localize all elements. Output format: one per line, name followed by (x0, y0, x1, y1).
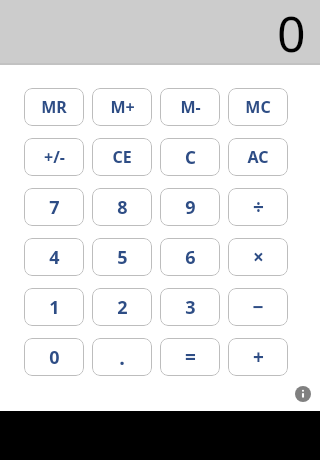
staticText: MC (245, 96, 271, 118)
staticText: C (185, 146, 196, 169)
button[interactable]: 5 (92, 238, 152, 276)
button[interactable]: Info (292, 383, 314, 405)
button[interactable]: = (160, 338, 220, 376)
button[interactable]: × (228, 238, 288, 276)
staticText: MR (41, 96, 67, 118)
button[interactable]: +/- (24, 138, 84, 176)
button[interactable]: 3 (160, 288, 220, 326)
staticText: = (185, 344, 196, 370)
button[interactable]: 1 (24, 288, 84, 326)
staticText: − (252, 294, 264, 320)
staticText: 0 (277, 0, 306, 64)
button[interactable]: 9 (160, 188, 220, 226)
button[interactable]: ÷ (228, 188, 288, 226)
staticText: ÷ (253, 194, 264, 220)
button[interactable]: 8 (92, 188, 152, 226)
staticText: 7 (49, 195, 60, 220)
button[interactable]: 0 (24, 338, 84, 376)
staticText: +/- (44, 146, 65, 168)
button[interactable]: 4 (24, 238, 84, 276)
button[interactable]: 6 (160, 238, 220, 276)
staticText: 3 (185, 295, 196, 320)
button[interactable]: CE (92, 138, 152, 176)
staticText: 0 (49, 345, 60, 370)
staticText: CE (112, 146, 132, 168)
staticText: 5 (117, 245, 128, 270)
button[interactable]: M- (160, 88, 220, 126)
staticText: AC (247, 146, 269, 168)
button[interactable]: 2 (92, 288, 152, 326)
staticText: × (253, 244, 264, 270)
staticText: 2 (117, 295, 128, 320)
button[interactable]: AC (228, 138, 288, 176)
staticText: M+ (110, 96, 135, 118)
button[interactable]: . (92, 338, 152, 376)
button[interactable]: C (160, 138, 220, 176)
staticText: 6 (185, 245, 196, 270)
staticText: M- (180, 96, 201, 118)
button[interactable]: MC (228, 88, 288, 126)
button[interactable]: M+ (92, 88, 152, 126)
staticText: 8 (117, 195, 128, 220)
button[interactable]: 7 (24, 188, 84, 226)
staticText: 4 (49, 245, 60, 270)
staticText: . (119, 344, 125, 371)
staticText: + (253, 344, 264, 370)
button[interactable]: MR (24, 88, 84, 126)
staticText: 1 (49, 295, 60, 320)
staticText: 9 (185, 195, 196, 220)
button[interactable]: + (228, 338, 288, 376)
button[interactable]: − (228, 288, 288, 326)
